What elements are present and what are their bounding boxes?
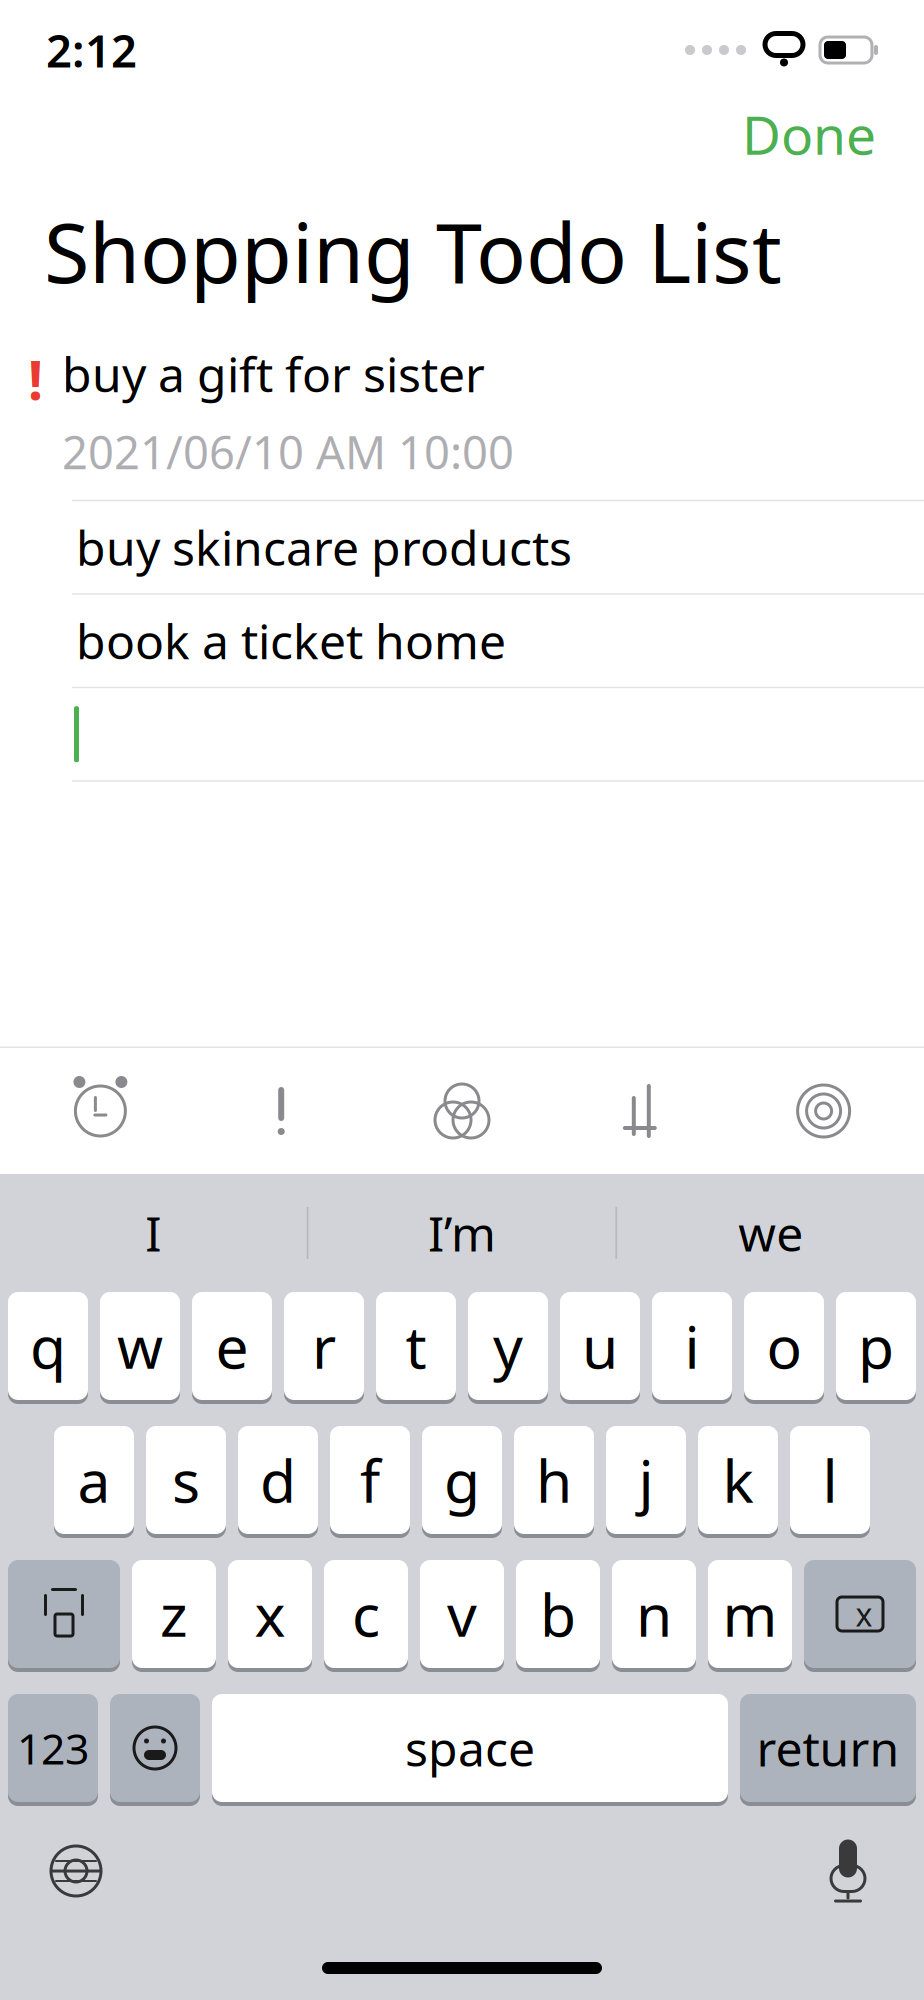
button[interactable]: l bbox=[790, 1426, 870, 1538]
staticText: u bbox=[582, 1307, 618, 1385]
button[interactable]: Reminder bbox=[10, 1048, 191, 1174]
button[interactable]: Delete bbox=[804, 1560, 916, 1672]
button[interactable]: c bbox=[324, 1560, 408, 1672]
button[interactable]: h bbox=[514, 1426, 594, 1538]
button[interactable]: Focus bbox=[733, 1048, 914, 1174]
button[interactable]: d bbox=[238, 1426, 318, 1538]
button[interactable]: Shift bbox=[8, 1560, 120, 1672]
button[interactable]: j bbox=[606, 1426, 686, 1538]
staticText: m bbox=[722, 1575, 777, 1653]
button[interactable]: I bbox=[0, 1174, 307, 1292]
button[interactable]: Priority bbox=[191, 1048, 372, 1174]
button[interactable]: v bbox=[420, 1560, 504, 1672]
button[interactable]: b bbox=[516, 1560, 600, 1672]
button[interactable]: k bbox=[698, 1426, 778, 1538]
staticText: s bbox=[172, 1441, 200, 1519]
button[interactable]: Tags bbox=[372, 1048, 552, 1174]
button[interactable]: Change keyboard bbox=[16, 1806, 136, 1936]
button[interactable]: Dictation bbox=[788, 1806, 908, 1936]
button[interactable]: x bbox=[228, 1560, 312, 1672]
staticText: space bbox=[405, 1716, 535, 1780]
button[interactable]: we bbox=[617, 1174, 924, 1292]
staticText: 2021/06/10 AM 10:00 bbox=[62, 421, 514, 482]
button[interactable]: space bbox=[212, 1694, 728, 1806]
button[interactable]: r bbox=[284, 1292, 364, 1404]
staticText: t bbox=[405, 1307, 426, 1385]
button[interactable]: f bbox=[330, 1426, 410, 1538]
staticText: buy skincare products bbox=[76, 515, 572, 579]
staticText: I bbox=[145, 1201, 161, 1265]
button[interactable]: g bbox=[422, 1426, 502, 1538]
staticText: y bbox=[493, 1307, 523, 1385]
button[interactable]: m bbox=[708, 1560, 792, 1672]
button[interactable]: y bbox=[468, 1292, 548, 1404]
button[interactable]: n bbox=[612, 1560, 696, 1672]
staticText: n bbox=[636, 1575, 672, 1653]
button[interactable]: i bbox=[652, 1292, 732, 1404]
button[interactable]: return bbox=[740, 1694, 916, 1806]
button[interactable]: s bbox=[146, 1426, 226, 1538]
staticText: d bbox=[260, 1441, 296, 1519]
button[interactable]: Done bbox=[722, 89, 896, 179]
button[interactable]: Share bbox=[552, 1048, 733, 1174]
staticText: p bbox=[858, 1307, 894, 1385]
button[interactable]: w bbox=[100, 1292, 180, 1404]
button[interactable]: o bbox=[744, 1292, 824, 1404]
button[interactable]: 123 bbox=[8, 1694, 98, 1806]
staticText: I’m bbox=[428, 1201, 496, 1265]
staticText: book a ticket home bbox=[76, 609, 506, 672]
button[interactable]: u bbox=[560, 1292, 640, 1404]
staticText: c bbox=[352, 1575, 380, 1653]
staticText: b bbox=[540, 1575, 576, 1653]
staticText: 123 bbox=[17, 1720, 89, 1776]
button[interactable]: t bbox=[376, 1292, 456, 1404]
staticText: v bbox=[447, 1575, 477, 1653]
button[interactable]: q bbox=[8, 1292, 88, 1404]
staticText: g bbox=[444, 1441, 480, 1519]
staticText: a bbox=[77, 1441, 110, 1519]
staticText: r bbox=[312, 1307, 336, 1385]
button[interactable]: buy skincare products bbox=[0, 501, 924, 593]
button[interactable]: a bbox=[54, 1426, 134, 1538]
button[interactable]: z bbox=[132, 1560, 216, 1672]
staticText: q bbox=[30, 1307, 66, 1385]
staticText: i bbox=[684, 1307, 699, 1385]
staticText: e bbox=[215, 1307, 248, 1385]
button[interactable]: book a ticket home bbox=[0, 595, 924, 687]
staticText: j bbox=[638, 1441, 653, 1519]
staticText: f bbox=[360, 1441, 380, 1519]
staticText: 2:12 bbox=[46, 20, 137, 80]
staticText: ! bbox=[28, 344, 43, 415]
button[interactable]: Emoji bbox=[110, 1694, 200, 1806]
staticText: x bbox=[254, 1575, 285, 1653]
staticText: k bbox=[722, 1441, 753, 1519]
staticText: Shopping Todo List bbox=[44, 196, 782, 306]
staticText: buy a gift for sister bbox=[62, 342, 485, 405]
staticText: o bbox=[766, 1307, 801, 1385]
staticText: return bbox=[756, 1716, 899, 1780]
button[interactable]: p bbox=[836, 1292, 916, 1404]
staticText: x bbox=[855, 1593, 872, 1635]
button[interactable]: e bbox=[192, 1292, 272, 1404]
staticText: l bbox=[822, 1441, 837, 1519]
staticText: z bbox=[160, 1575, 188, 1653]
staticText: h bbox=[536, 1441, 572, 1519]
staticText: Done bbox=[742, 99, 876, 169]
button[interactable]: I’m bbox=[309, 1174, 615, 1292]
staticText: we bbox=[738, 1201, 803, 1265]
staticText: w bbox=[117, 1307, 163, 1385]
